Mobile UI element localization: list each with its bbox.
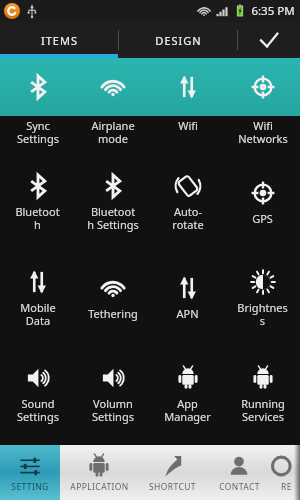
staticText: RE [281,481,292,493]
button[interactable]: Mobile Data [0,267,75,328]
staticText: Bluetoot h Settings [87,204,139,232]
button[interactable]: Volumn Settings [75,363,150,424]
staticText: Mobile Data [20,300,56,328]
button[interactable]: APN [150,273,225,321]
staticText: SETTING [11,481,49,493]
button[interactable]: Airplane mode [75,58,150,154]
staticText: APPLICATION [70,481,129,493]
button[interactable]: RE [272,445,300,500]
staticText: Bluetoot h [15,204,60,232]
staticText: Tethering [88,306,138,321]
button[interactable]: ITEMS [0,22,118,58]
button[interactable]: Sound Settings [0,363,75,424]
staticText: APN [176,306,199,321]
button[interactable]: CONTACT [206,445,272,500]
staticText: Sync Settings [17,118,59,146]
button[interactable]: Bluetoot h [0,171,75,232]
staticText: DESIGN [155,33,202,48]
button[interactable]: DESIGN [119,22,237,58]
staticText: Running Services [241,396,285,424]
button[interactable]: Sync Settings [0,58,75,154]
staticText: CONTACT [219,481,260,493]
button[interactable]: Brightnes s [225,267,300,328]
staticText: SHORTCUT [149,481,196,493]
button[interactable]: Wifi [150,58,225,154]
button[interactable]: App Manager [150,363,225,424]
staticText: Sound Settings [17,396,59,424]
staticText: Volumn Settings [92,396,134,424]
staticText: Auto- rotate [172,204,204,232]
button[interactable]: Auto- rotate [150,171,225,232]
staticText: Airplane mode [91,118,135,146]
staticText: 6:35 PM [251,3,295,19]
button[interactable]: SETTING [0,445,60,500]
staticText: Wifi [178,118,198,133]
staticText: Brightnes s [237,300,288,328]
button[interactable]: Tethering [75,273,150,321]
staticText: Wifi Networks [238,118,288,146]
button[interactable]: Bluetoot h Settings [75,171,150,232]
staticText: App Manager [164,396,211,424]
button[interactable]: SHORTCUT [138,445,206,500]
button[interactable]: Confirm [238,22,300,58]
button[interactable]: GPS [225,178,300,226]
staticText: ITEMS [41,33,78,48]
staticText: GPS [252,211,273,226]
button[interactable]: Running Services [225,363,300,424]
button[interactable]: Wifi Networks [225,58,300,154]
button[interactable]: APPLICATION [60,445,138,500]
